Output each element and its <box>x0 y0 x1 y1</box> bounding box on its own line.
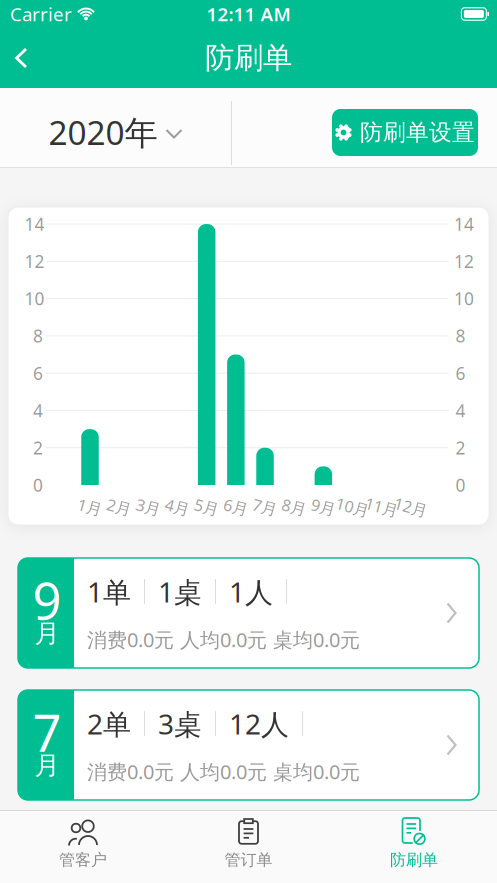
staticText: 消费0.0元 人均0.0元 桌均0.0元 <box>87 626 360 653</box>
staticText: 12月 <box>394 496 428 518</box>
staticText: 14 <box>24 212 44 235</box>
staticText: 月 <box>34 750 59 781</box>
staticText: Carrier <box>10 2 72 26</box>
staticText: 2月 <box>107 496 132 518</box>
staticText: 防刷单设置 <box>360 119 475 146</box>
staticText: 1单 <box>87 573 131 610</box>
staticText: 7 <box>32 698 61 766</box>
staticText: 10 <box>24 287 44 310</box>
staticText: 消费0.0元 人均0.0元 桌均0.0元 <box>87 758 360 785</box>
button[interactable]: 防刷单设置 <box>332 109 478 156</box>
button[interactable]: 管客户 <box>0 811 165 883</box>
staticText: 0 <box>33 473 43 496</box>
staticText: 防刷单 <box>390 850 438 870</box>
staticText: 8 <box>33 324 43 347</box>
button[interactable]: 管订单 <box>165 811 331 883</box>
staticText: 10月 <box>335 496 369 518</box>
staticText: 9月 <box>311 496 336 518</box>
staticText: 2 <box>33 436 43 459</box>
staticText: 11月 <box>365 496 399 518</box>
button[interactable]: Back <box>0 28 42 88</box>
staticText: 4 <box>455 399 465 422</box>
staticText: 管客户 <box>59 850 107 870</box>
staticText: 8 <box>455 324 465 347</box>
button[interactable]: 9 <box>18 558 479 668</box>
staticText: 3月 <box>136 496 161 518</box>
staticText: 6月 <box>223 496 248 518</box>
staticText: 0 <box>455 473 465 496</box>
staticText: 2单 <box>87 705 131 742</box>
staticText: 12人 <box>229 705 289 742</box>
staticText: 6 <box>33 362 43 385</box>
staticText: 2 <box>455 436 465 459</box>
button[interactable]: 2020年 <box>0 88 231 167</box>
staticText: 1桌 <box>158 573 202 610</box>
staticText: 月 <box>34 618 59 649</box>
staticText: 12 <box>24 250 44 273</box>
staticText: 2020年 <box>48 110 157 154</box>
staticText: 4 <box>33 399 43 422</box>
staticText: 14 <box>454 212 474 235</box>
staticText: 1人 <box>229 573 273 610</box>
staticText: 9 <box>32 566 61 634</box>
button[interactable]: 防刷单 <box>331 811 496 883</box>
staticText: 1月 <box>77 496 102 518</box>
button[interactable]: 7 <box>18 690 479 800</box>
staticText: 防刷单 <box>205 40 292 76</box>
staticText: 3桌 <box>158 705 202 742</box>
staticText: 7月 <box>252 496 277 518</box>
staticText: 12 <box>454 250 474 273</box>
staticText: 4月 <box>165 496 190 518</box>
staticText: 管订单 <box>224 850 272 870</box>
staticText: 8月 <box>282 496 307 518</box>
staticText: 12:11 AM <box>206 2 290 26</box>
staticText: 10 <box>454 287 474 310</box>
staticText: 5月 <box>194 496 219 518</box>
staticText: 6 <box>455 362 465 385</box>
